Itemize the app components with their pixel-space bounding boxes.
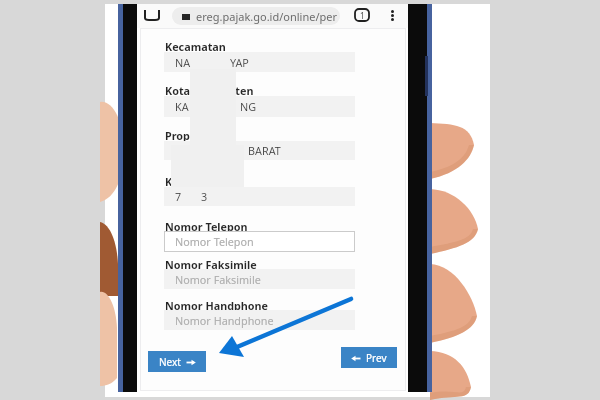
staticText: Kecamatan: [165, 39, 226, 54]
button[interactable]: More options: [389, 10, 396, 21]
staticText: Kode Pos: [165, 174, 214, 189]
button[interactable]: Tabs: [355, 9, 369, 21]
staticText: YAP: [230, 55, 249, 70]
staticText: ereg.pajak.go.id/online/per: [196, 9, 338, 24]
staticText: Next: [159, 355, 181, 369]
staticText: 3: [201, 189, 208, 204]
staticText: NG: [240, 99, 257, 114]
button[interactable]: Nomor Faksimile: [164, 269, 355, 289]
staticText: 1: [360, 10, 365, 21]
staticText: NA: [175, 55, 191, 70]
button[interactable]: Prev: [341, 347, 397, 368]
staticText: Prev: [366, 351, 387, 365]
button[interactable]: Nomor Handphone: [164, 310, 355, 330]
staticText: Nomor Telepon: [165, 219, 248, 234]
staticText: Nomor Telepon: [175, 234, 254, 249]
staticText: Nomor Faksimile: [165, 257, 257, 272]
staticText: Nomor Handphone: [165, 298, 269, 313]
button[interactable]: JAWA: [164, 141, 355, 160]
button[interactable]: Next: [148, 351, 206, 372]
button[interactable]: Tab switcher: [144, 10, 160, 20]
staticText: BARAT: [248, 143, 281, 158]
staticText: Nomor Handphone: [175, 313, 274, 328]
button[interactable]: Nomor Telepon: [164, 231, 355, 252]
staticText: Nomor Faksimile: [175, 272, 261, 287]
staticText: KA: [175, 99, 189, 114]
button[interactable]: NA: [164, 52, 355, 72]
staticText: Propinsi: [165, 128, 209, 143]
button[interactable]: KA: [164, 96, 355, 117]
button[interactable]: ereg.pajak.go.id/online/per: [172, 7, 340, 25]
staticText: 7: [175, 189, 182, 204]
button[interactable]: 7: [164, 187, 355, 206]
staticText: Kota/Kabupaten: [165, 83, 254, 98]
